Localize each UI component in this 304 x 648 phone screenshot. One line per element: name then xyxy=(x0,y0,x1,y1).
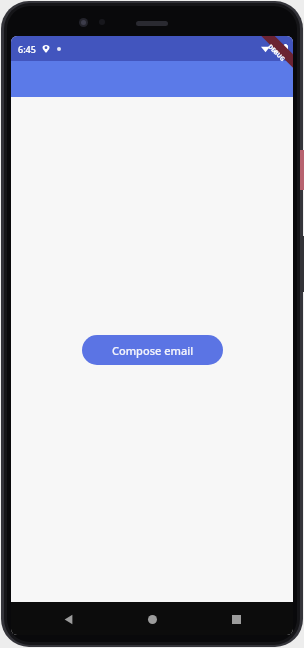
staticText: Compose email xyxy=(112,343,194,358)
button[interactable]: Back xyxy=(55,606,81,632)
button[interactable] xyxy=(11,61,293,97)
staticText: 6:45 xyxy=(18,43,36,55)
button[interactable]: Home xyxy=(139,606,165,632)
button[interactable]: Compose email xyxy=(82,335,223,365)
staticText: DEBUG xyxy=(266,43,287,63)
button[interactable]: Recent apps xyxy=(223,606,249,632)
